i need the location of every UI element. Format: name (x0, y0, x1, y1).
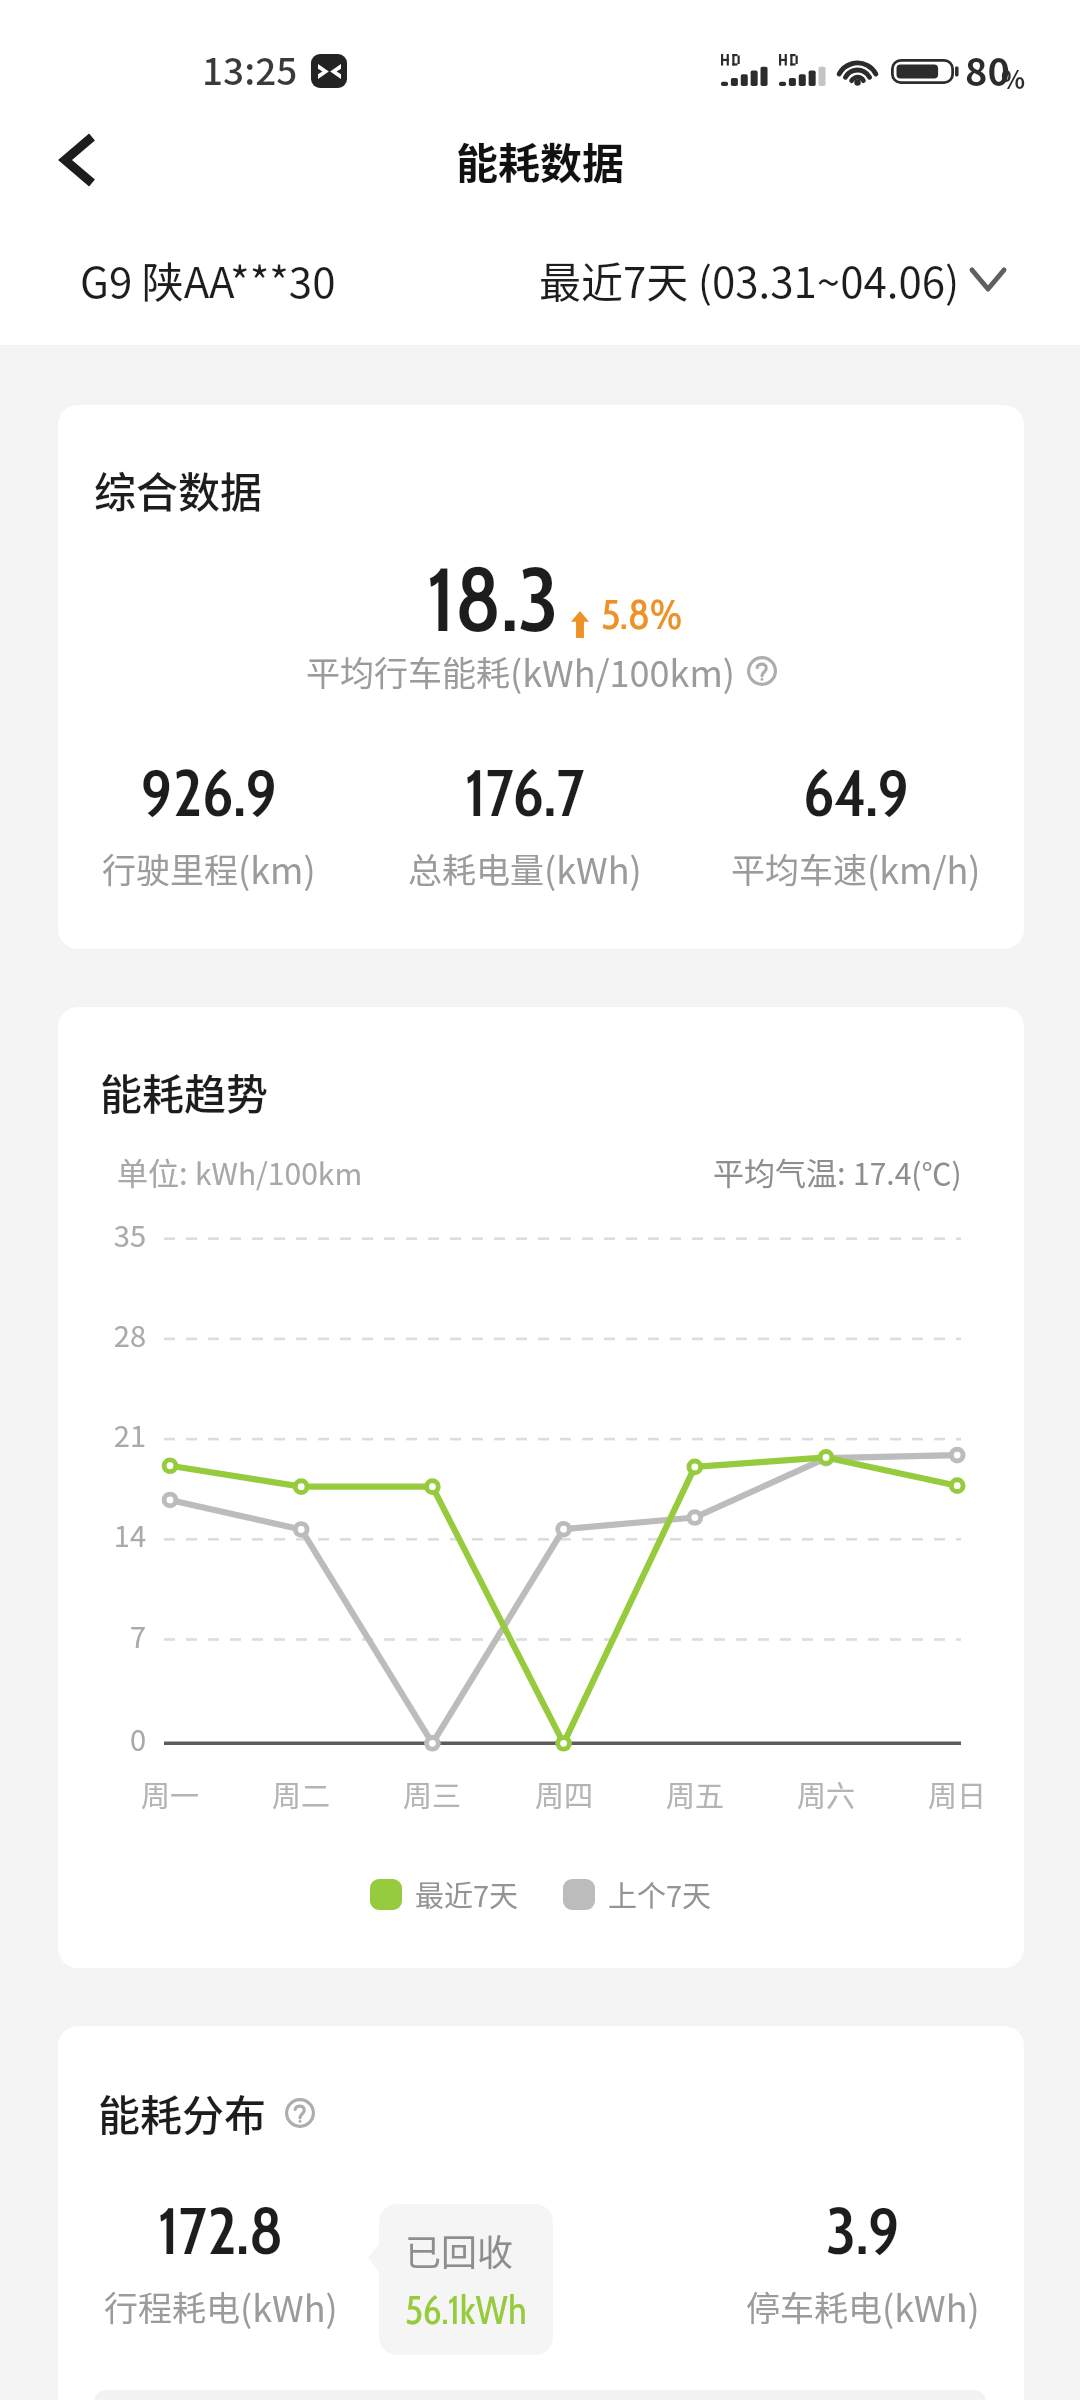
staticText: 5.8% (601, 588, 682, 639)
staticText: 周六 (746, 1773, 906, 1815)
staticText: (kWh) (240, 2280, 338, 2332)
staticText: 周一 (90, 1773, 250, 1815)
staticText: 最近7天 (415, 1873, 519, 1915)
staticText: (km) (238, 842, 316, 894)
staticText: 能耗趋势 (100, 1061, 269, 1122)
button[interactable]: Back (38, 120, 118, 200)
staticText: 3.9 (826, 2190, 900, 2270)
staticText: 7 (58, 1614, 146, 1656)
staticText: 行驶里程 (102, 844, 238, 893)
staticText: 最近7天 (03.31~04.06) (539, 249, 960, 310)
staticText: : (837, 1149, 853, 1194)
staticText: 17.4(℃) (853, 1150, 962, 1193)
staticText: kWh/100km (195, 1150, 363, 1193)
staticText: (kWh/100km) (510, 645, 735, 697)
staticText: 平均气温 (713, 1149, 837, 1194)
staticText: 64.9 (803, 752, 910, 832)
staticText: 56.1kWh (405, 2286, 527, 2333)
staticText: 能耗分布 (98, 2082, 267, 2143)
staticText: 单位 (117, 1149, 179, 1194)
staticText: 周二 (221, 1773, 381, 1815)
staticText: 926.9 (141, 752, 278, 832)
staticText: 18.3 (427, 545, 559, 653)
staticText: 周日 (877, 1773, 1024, 1815)
staticText: 21 (58, 1413, 146, 1455)
staticText: 综合数据 (94, 459, 263, 520)
staticText: 80 (965, 42, 1010, 97)
staticText: 已回收 (405, 2224, 514, 2276)
staticText: 176.7 (465, 752, 585, 832)
staticText: 上个7天 (608, 1873, 712, 1915)
staticText: 13:25 (202, 42, 298, 96)
staticText: 能耗数据 (456, 130, 625, 191)
staticText: 0 (58, 1717, 146, 1759)
staticText: 14 (58, 1513, 146, 1555)
staticText: 平均行车能耗 (306, 647, 510, 696)
staticText: (kWh) (544, 842, 642, 894)
staticText: % (1001, 60, 1026, 96)
staticText: 行程耗电 (104, 2282, 240, 2331)
staticText: 35 (58, 1213, 146, 1255)
staticText: : (179, 1149, 195, 1194)
staticText: 总耗电量 (408, 844, 544, 893)
staticText: 172.8 (158, 2190, 284, 2270)
staticText: 周三 (352, 1773, 512, 1815)
staticText: 周四 (484, 1773, 644, 1815)
staticText: (kWh) (882, 2280, 980, 2332)
staticText: (km/h) (867, 842, 981, 894)
staticText: 28 (58, 1313, 146, 1355)
staticText: 周五 (615, 1773, 775, 1815)
button[interactable]: 最近7天 (03.31~04.06) (539, 249, 1004, 310)
staticText: 停车耗电 (746, 2282, 882, 2331)
staticText: G9 陕AA***30 (80, 249, 336, 310)
staticText: 平均车速 (731, 844, 867, 893)
